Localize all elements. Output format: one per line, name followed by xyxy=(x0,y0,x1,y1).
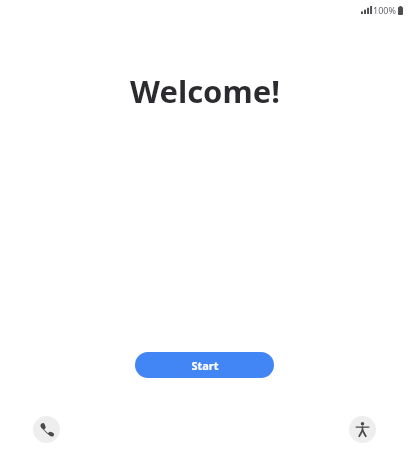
button[interactable]: Start xyxy=(135,352,274,378)
button[interactable]: Call xyxy=(33,416,60,443)
staticText: 100% xyxy=(373,4,396,16)
staticText: Welcome! xyxy=(130,70,280,112)
button[interactable]: Accessibility xyxy=(349,416,376,443)
staticText: Start xyxy=(191,358,219,373)
